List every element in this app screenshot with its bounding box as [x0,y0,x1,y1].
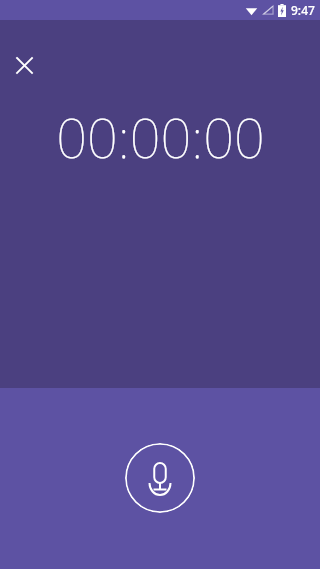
staticText: 00:00:00 [56,100,265,174]
staticText: 9:47 [291,2,315,18]
button[interactable]: Close [6,47,42,83]
button[interactable]: Record with microphone [125,443,195,513]
